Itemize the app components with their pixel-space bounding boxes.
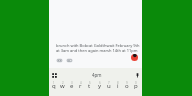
staticText: 1 bbox=[53, 81, 55, 85]
button[interactable]: 4 bbox=[76, 79, 85, 96]
staticText: 2 bbox=[62, 81, 64, 85]
staticText: o bbox=[125, 82, 129, 90]
button[interactable]: 9 bbox=[122, 79, 131, 96]
button[interactable]: 2 bbox=[58, 79, 67, 96]
staticText: 4pm bbox=[92, 72, 102, 78]
button[interactable]: 3 bbox=[67, 79, 76, 96]
staticText: r bbox=[79, 82, 82, 90]
staticText: y bbox=[98, 82, 102, 90]
button[interactable]: Send bbox=[131, 54, 138, 61]
button[interactable]: 8 bbox=[113, 79, 122, 96]
staticText: w bbox=[60, 82, 65, 90]
button[interactable]: Voice input bbox=[135, 73, 140, 78]
staticText: 7 bbox=[108, 81, 110, 85]
staticText: e bbox=[70, 82, 74, 90]
staticText: 0 bbox=[135, 81, 137, 85]
staticText: p bbox=[134, 82, 138, 90]
button[interactable]: 7 bbox=[104, 79, 113, 96]
staticText: 9 bbox=[126, 81, 128, 85]
button[interactable]: 1 bbox=[49, 79, 58, 96]
staticText: 8 bbox=[117, 81, 119, 85]
staticText: u bbox=[107, 82, 111, 90]
staticText: t bbox=[88, 82, 91, 90]
staticText: 3 bbox=[71, 81, 73, 85]
staticText: 4 bbox=[80, 81, 82, 85]
button[interactable]: Sticker bbox=[57, 58, 62, 63]
button[interactable]: Toolbar bbox=[52, 73, 57, 78]
staticText: 5 bbox=[89, 81, 91, 85]
button[interactable]: 5 bbox=[85, 79, 94, 96]
staticText: brunch with Bobcat Goldthwait February 9… bbox=[56, 43, 142, 53]
button[interactable]: 6 bbox=[95, 79, 104, 96]
staticText: 6 bbox=[99, 81, 101, 85]
button[interactable]: 0 bbox=[131, 79, 140, 96]
button[interactable]: Insert image bbox=[67, 58, 72, 63]
staticText: q bbox=[52, 82, 56, 90]
staticText: i bbox=[117, 82, 119, 90]
